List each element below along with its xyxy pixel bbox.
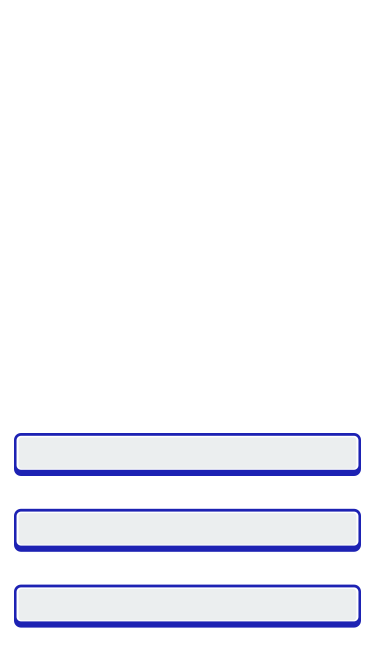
button[interactable]: Option 2 <box>14 509 361 552</box>
button[interactable]: Option 1 <box>14 433 361 476</box>
button[interactable]: Option 3 <box>14 585 361 628</box>
